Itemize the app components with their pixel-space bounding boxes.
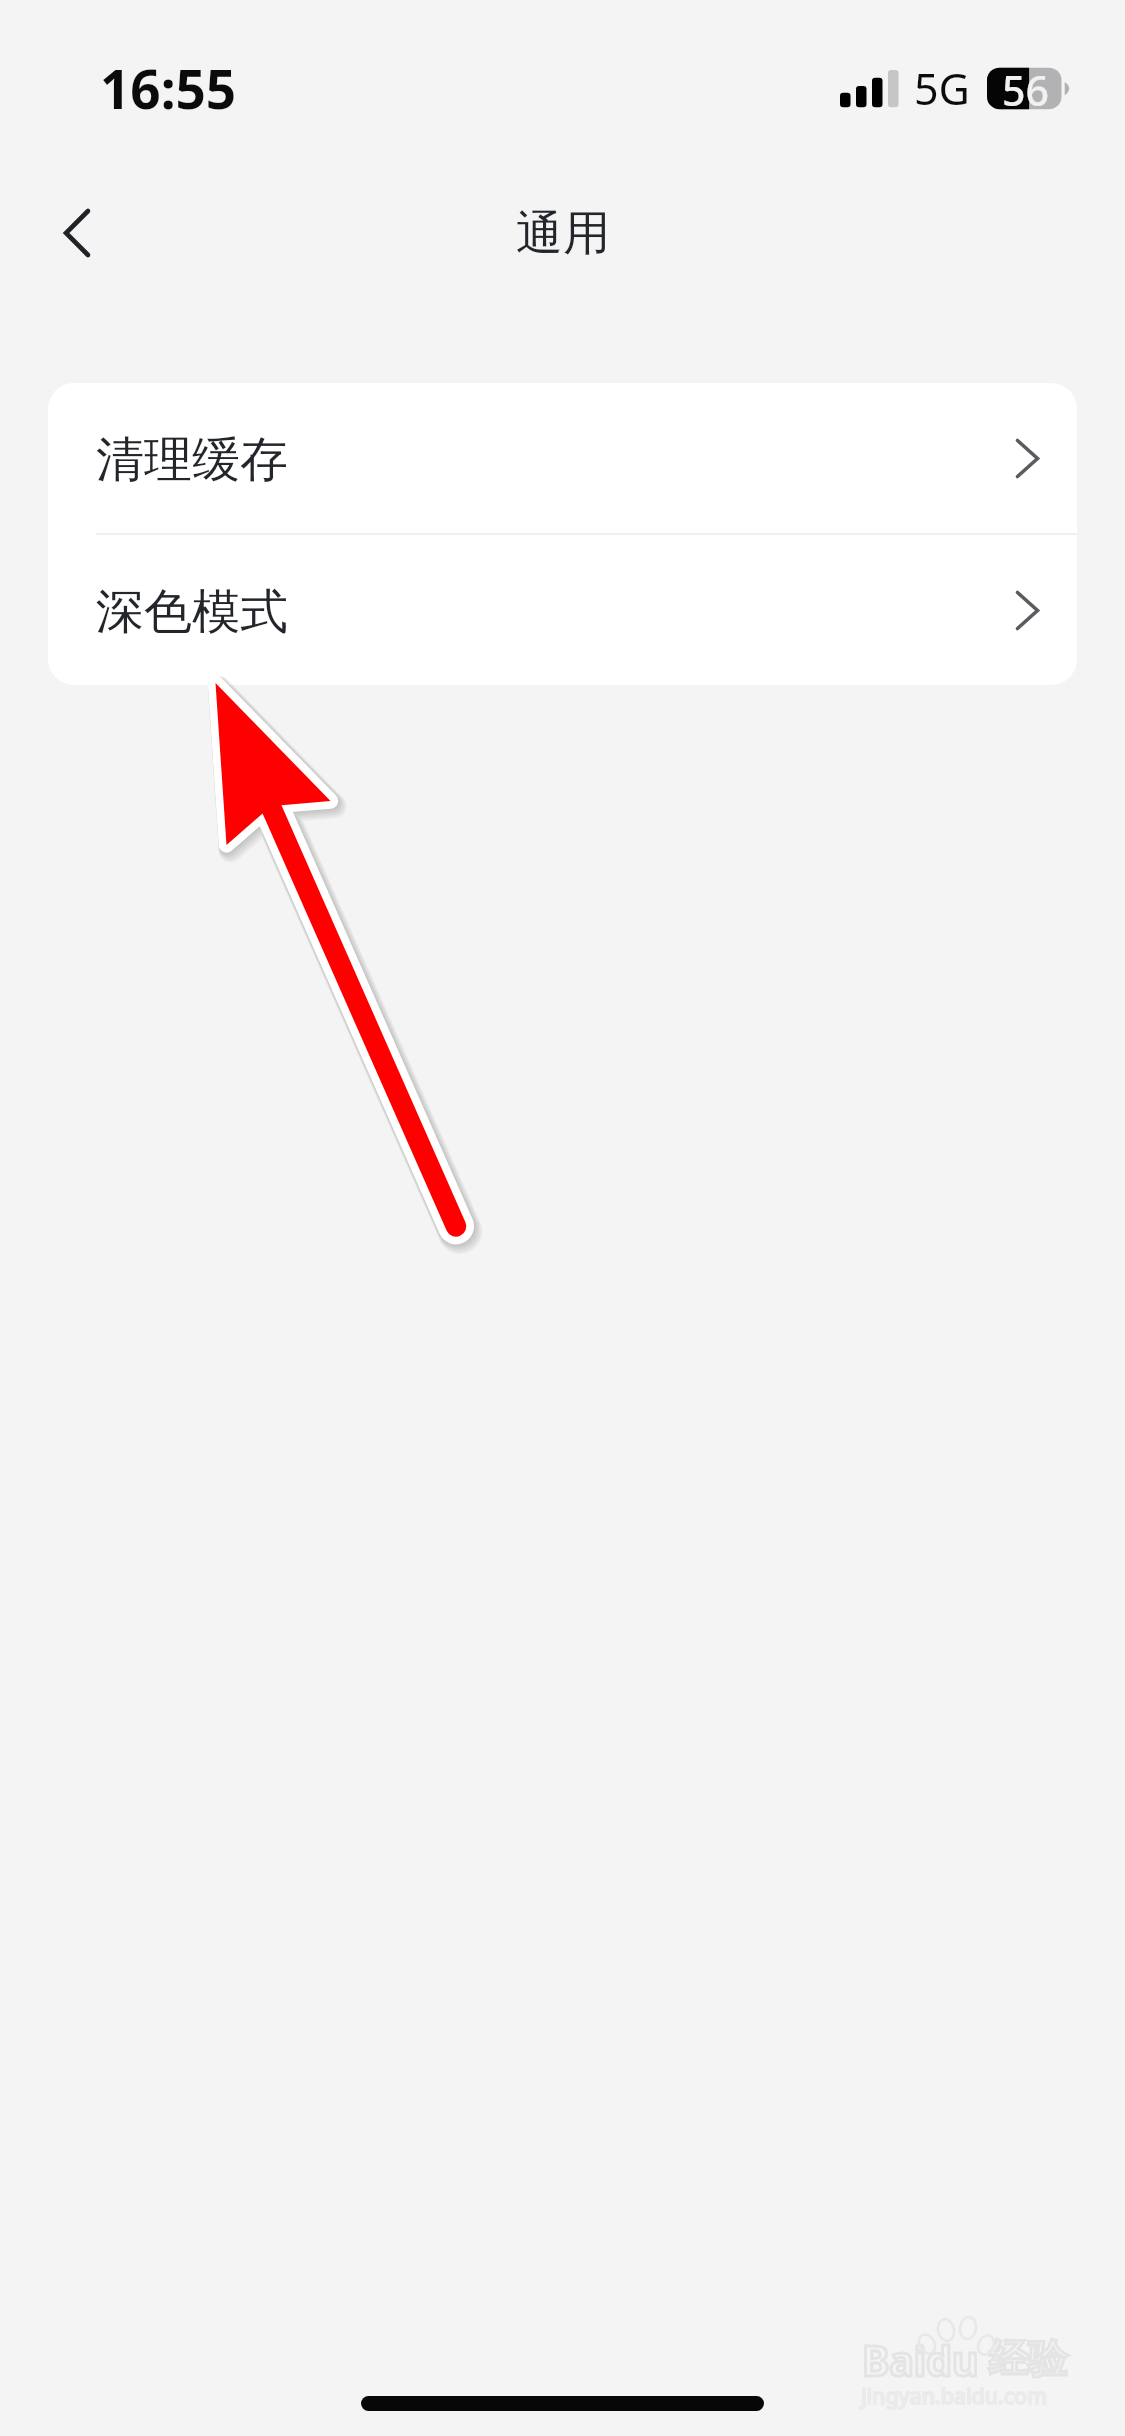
button[interactable]: 清理缓存 xyxy=(48,383,1077,533)
staticText: 56 xyxy=(1002,62,1049,118)
staticText: 清理缓存 xyxy=(96,430,288,490)
staticText: 5G xyxy=(914,59,970,118)
staticText: 深色模式 xyxy=(96,582,288,642)
button[interactable]: 深色模式 xyxy=(48,535,1077,685)
staticText: 通用 xyxy=(516,204,610,263)
button[interactable]: Back xyxy=(32,188,122,278)
staticText: 16:55 xyxy=(100,52,237,124)
